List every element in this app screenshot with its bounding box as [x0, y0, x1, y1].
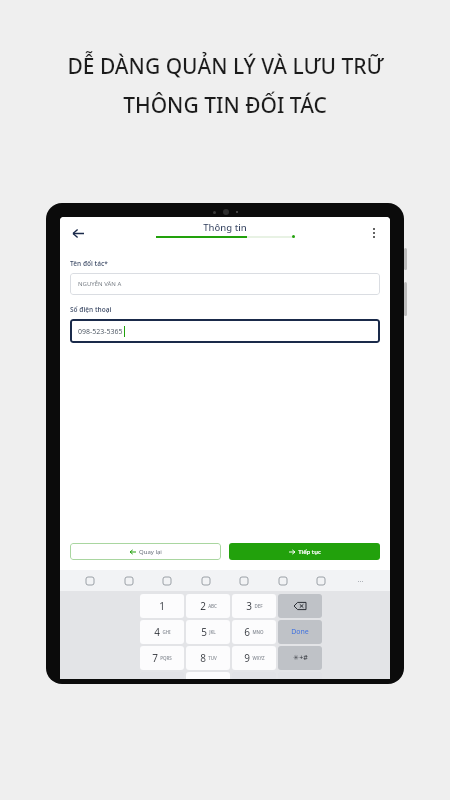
- button[interactable]: Keyboard tool 7: [313, 573, 329, 589]
- button[interactable]: 7: [140, 646, 184, 670]
- staticText: PQRS: [160, 655, 172, 661]
- staticText: Quay lại: [139, 548, 162, 556]
- button[interactable]: Keyboard tool 8: [352, 573, 368, 589]
- staticText: DEF: [254, 603, 263, 609]
- button[interactable]: 4: [140, 620, 184, 644]
- staticText: GHI: [162, 629, 171, 635]
- staticText: 7: [152, 651, 158, 665]
- button[interactable]: Tiếp tục: [229, 543, 380, 560]
- button[interactable]: Keyboard tool 6: [275, 573, 291, 589]
- staticText: Done: [291, 627, 309, 637]
- button[interactable]: 5: [186, 620, 230, 644]
- button[interactable]: Keyboard tool 4: [198, 573, 214, 589]
- staticText: ✳+#: [293, 653, 308, 663]
- button[interactable]: 9: [232, 646, 276, 670]
- button[interactable]: 6: [232, 620, 276, 644]
- staticText: TUV: [208, 655, 217, 661]
- staticText: JKL: [209, 629, 216, 635]
- button[interactable]: Key: [278, 594, 322, 618]
- button[interactable]: 1: [140, 594, 184, 618]
- staticText: MNO: [252, 629, 264, 635]
- staticText: Tiếp tục: [298, 548, 321, 556]
- button[interactable]: 3: [232, 594, 276, 618]
- button[interactable]: Key: [278, 646, 322, 670]
- button[interactable]: 098-523-5365: [70, 319, 380, 343]
- staticText: 5: [201, 625, 207, 639]
- staticText: Số điện thoại: [70, 305, 112, 314]
- staticText: DỄ DÀNG QUẢN LÝ VÀ LƯU TRỮ: [67, 52, 384, 81]
- staticText: Tên đối tác*: [70, 259, 108, 268]
- button[interactable]: Quay lại: [70, 543, 221, 560]
- staticText: 098-523-5365: [78, 327, 123, 337]
- staticText: THÔNG TIN ĐỐI TÁC: [123, 91, 327, 120]
- button[interactable]: Keyboard tool 2: [121, 573, 137, 589]
- button[interactable]: NGUYỄN VĂN A: [70, 273, 380, 295]
- staticText: NGUYỄN VĂN A: [78, 280, 122, 288]
- staticText: 6: [244, 625, 250, 639]
- staticText: 9: [244, 651, 250, 665]
- button[interactable]: 2: [186, 594, 230, 618]
- button[interactable]: More options: [364, 223, 384, 243]
- staticText: 3: [246, 599, 252, 613]
- button[interactable]: Keyboard tool 1: [82, 573, 98, 589]
- button[interactable]: Key: [278, 620, 322, 644]
- staticText: Thông tin: [203, 221, 247, 234]
- staticText: 4: [154, 625, 160, 639]
- button[interactable]: Back: [66, 221, 90, 245]
- staticText: ABC: [208, 603, 217, 609]
- staticText: WXYZ: [252, 655, 265, 661]
- staticText: 1: [159, 599, 165, 613]
- staticText: 8: [200, 651, 206, 665]
- button[interactable]: Keyboard tool 5: [236, 573, 252, 589]
- staticText: 2: [200, 599, 206, 613]
- button[interactable]: Keyboard tool 3: [159, 573, 175, 589]
- button[interactable]: 8: [186, 646, 230, 670]
